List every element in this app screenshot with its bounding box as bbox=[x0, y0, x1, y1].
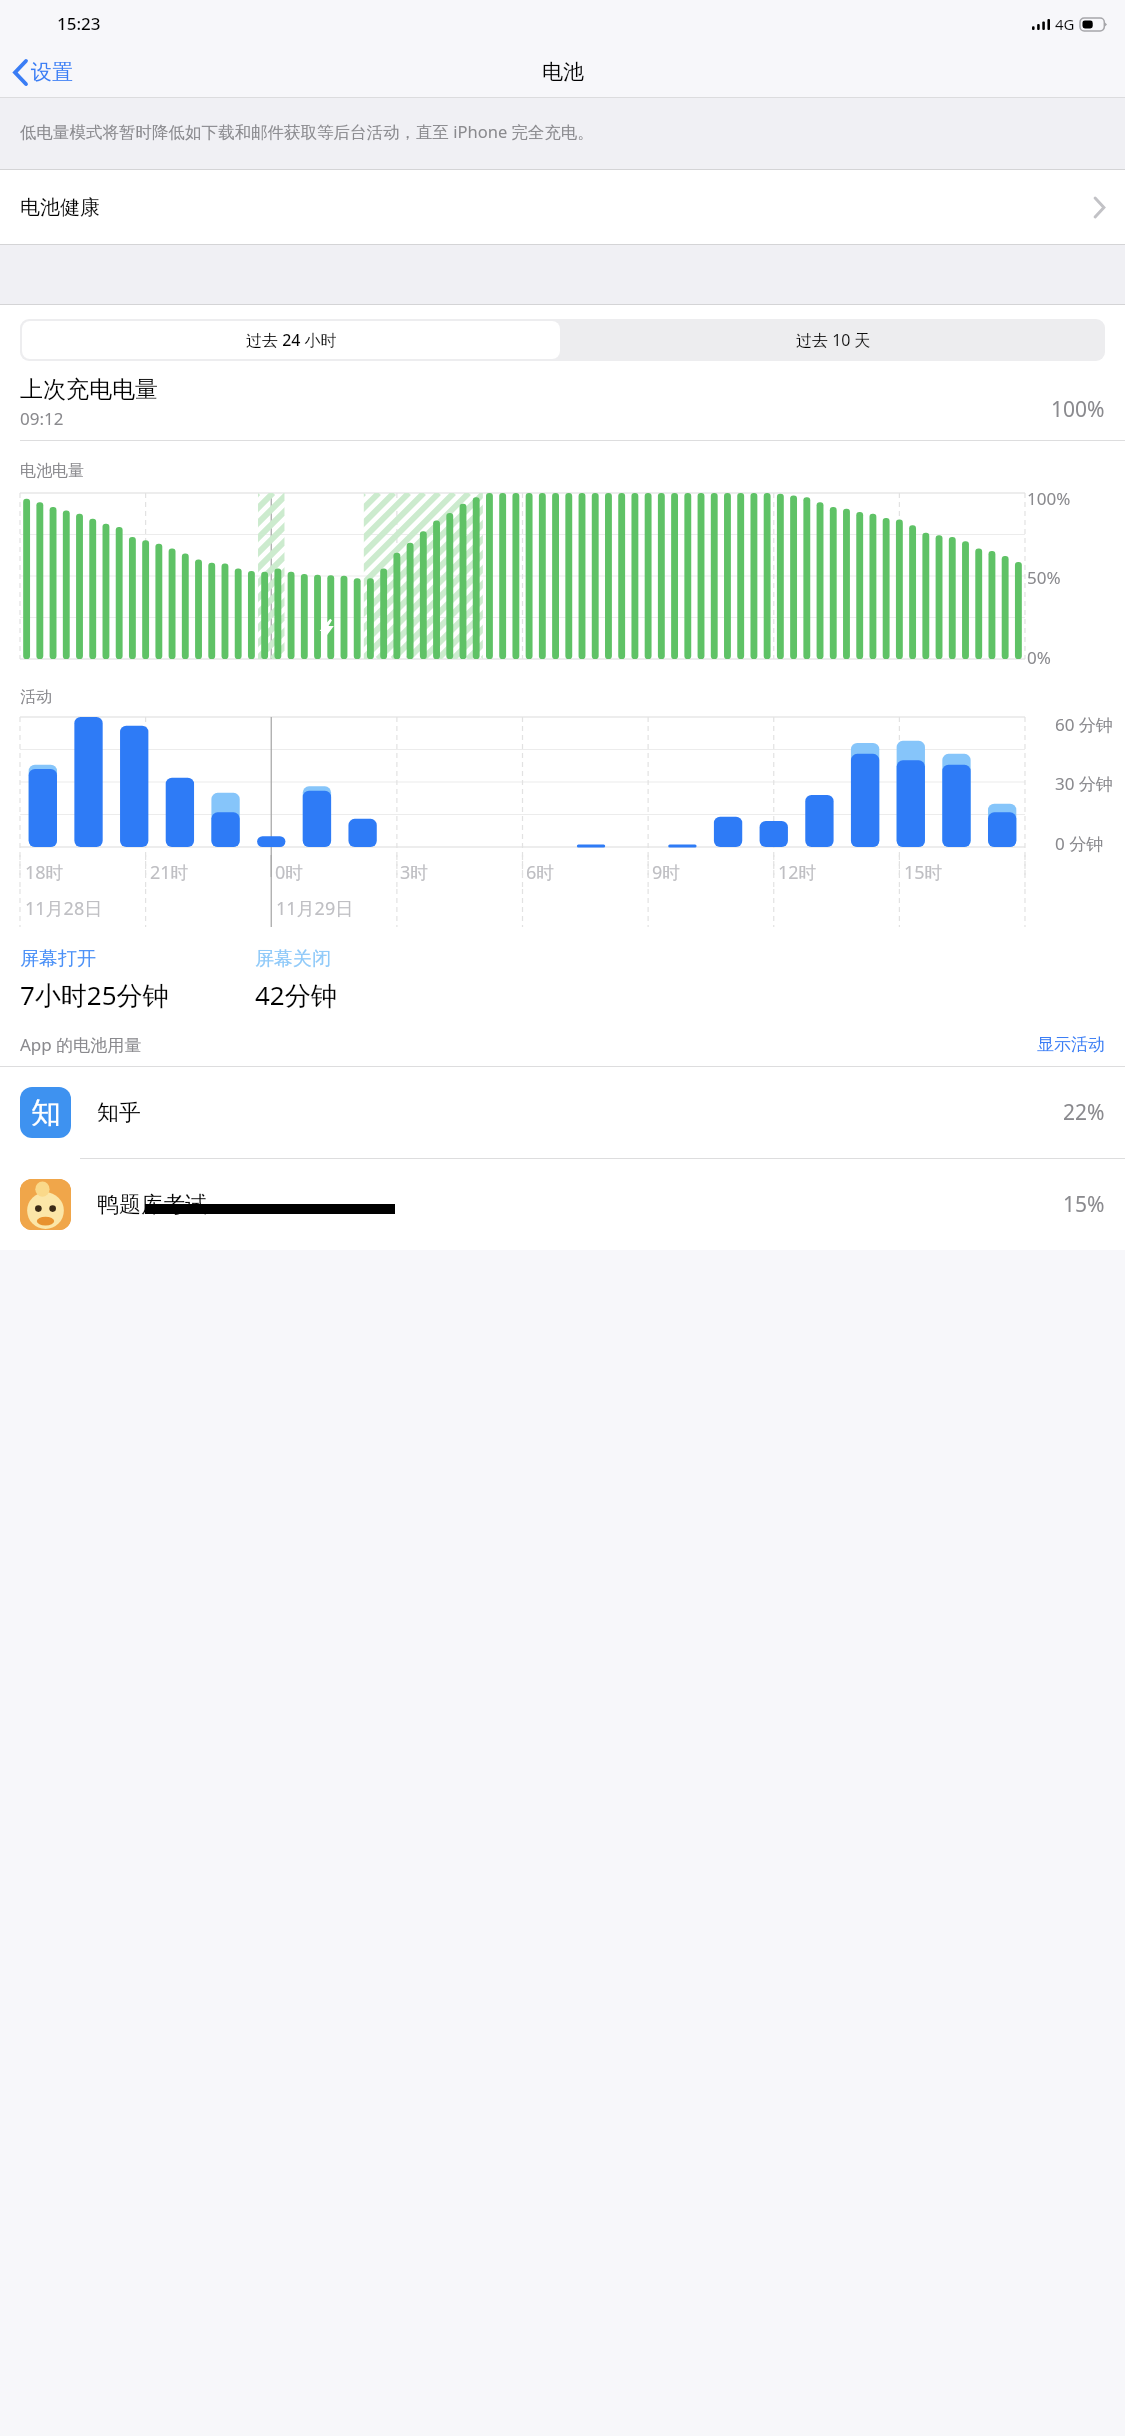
staticText: 3时 bbox=[400, 860, 429, 885]
staticText: 7小时25分钟 bbox=[20, 977, 169, 1013]
staticText: 显示活动 bbox=[1037, 1034, 1105, 1055]
staticText: 60 分钟 bbox=[1055, 713, 1113, 736]
staticText: 6时 bbox=[20, 855, 22, 856]
staticText: 09:12 bbox=[20, 407, 64, 430]
staticText: 0% bbox=[1027, 646, 1051, 669]
staticText: 上次充电电量 bbox=[20, 375, 158, 404]
staticText: 屏幕关闭 bbox=[255, 947, 331, 971]
button[interactable]: 过去 24 小时 bbox=[22, 321, 560, 359]
staticText: 过去 24 小时 bbox=[246, 329, 337, 351]
staticText: 知乎 bbox=[97, 1099, 141, 1127]
staticText: 3时 bbox=[20, 855, 22, 856]
button[interactable]: 电池健康 bbox=[0, 170, 1125, 244]
staticText: 21时 bbox=[150, 860, 189, 885]
staticText: 42分钟 bbox=[255, 977, 337, 1013]
staticText: 知 bbox=[31, 1094, 61, 1132]
staticText: 18时 bbox=[20, 855, 23, 856]
staticText: 电池电量 bbox=[20, 461, 84, 481]
button[interactable]: 显示活动 bbox=[1037, 1034, 1105, 1055]
staticText: 9时 bbox=[20, 855, 22, 856]
staticText: 电池 bbox=[542, 59, 584, 85]
staticText: 15:23 bbox=[57, 12, 101, 35]
staticText: 0 分钟 bbox=[1055, 832, 1104, 855]
staticText: 4G bbox=[1055, 14, 1075, 34]
staticText: 15时 bbox=[904, 860, 943, 885]
staticText: 100% bbox=[1051, 395, 1105, 424]
staticText: 活动 bbox=[20, 687, 52, 707]
staticText: 低电量模式将暂时降低如下载和邮件获取等后台活动，直至 iPhone 完全充电。 bbox=[20, 120, 595, 143]
button[interactable]: 过去 10 天 bbox=[562, 319, 1105, 361]
staticText: 0时 bbox=[275, 860, 304, 885]
staticText: 6时 bbox=[526, 860, 555, 885]
button[interactable]: 知 bbox=[0, 1067, 1125, 1158]
staticText: 15% bbox=[1063, 1190, 1105, 1219]
staticText: 11月28日 bbox=[25, 896, 103, 921]
staticText: 设置 bbox=[31, 59, 73, 85]
staticText: 15时 bbox=[20, 855, 23, 856]
staticText: 21时 bbox=[20, 855, 23, 856]
staticText: App 的电池用量 bbox=[20, 1033, 142, 1056]
staticText: 0时 bbox=[20, 855, 22, 856]
staticText: 11月29日 bbox=[276, 896, 354, 921]
staticText: 100% bbox=[1027, 487, 1071, 510]
staticText: 过去 10 天 bbox=[796, 329, 871, 351]
staticText: 22% bbox=[1063, 1098, 1105, 1127]
staticText: 电池健康 bbox=[20, 195, 100, 220]
staticText: 屏幕打开 bbox=[20, 947, 96, 971]
staticText: 9时 bbox=[652, 860, 681, 885]
staticText: 50% bbox=[1027, 566, 1061, 589]
button[interactable]: 鸭题库考试 bbox=[0, 1159, 1125, 1250]
staticText: 30 分钟 bbox=[1055, 772, 1113, 795]
staticText: 18时 bbox=[25, 860, 64, 885]
button[interactable]: 设置 bbox=[0, 53, 83, 91]
staticText: 12时 bbox=[778, 860, 817, 885]
staticText: 鸭题库考试 bbox=[97, 1191, 207, 1219]
staticText: 12时 bbox=[20, 855, 23, 856]
